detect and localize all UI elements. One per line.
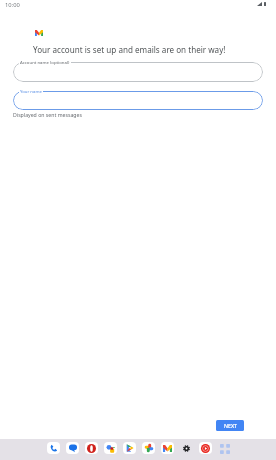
button[interactable]: Contacts [104, 442, 117, 454]
staticText: Your account is set up and emails are on… [33, 44, 226, 55]
button[interactable]: Gmail [161, 442, 174, 454]
button[interactable]: All apps [218, 442, 231, 454]
staticText: Account name (optional) [20, 59, 70, 65]
button[interactable]: YouTube Music [199, 442, 212, 454]
staticText: 10:00 [5, 1, 20, 9]
button[interactable]: Photos [142, 442, 155, 454]
staticText: NEXT [224, 422, 237, 429]
button[interactable] [13, 62, 263, 82]
button[interactable] [13, 91, 263, 110]
button[interactable]: Settings [180, 442, 193, 454]
button[interactable]: Messages [66, 442, 79, 454]
button[interactable]: Phone [47, 442, 60, 454]
button[interactable]: Play Store [123, 442, 136, 454]
button[interactable]: NEXT [216, 420, 244, 431]
button[interactable]: Opera [85, 442, 98, 454]
staticText: Your name [20, 88, 42, 94]
staticText: Displayed on sent messages [13, 111, 82, 118]
